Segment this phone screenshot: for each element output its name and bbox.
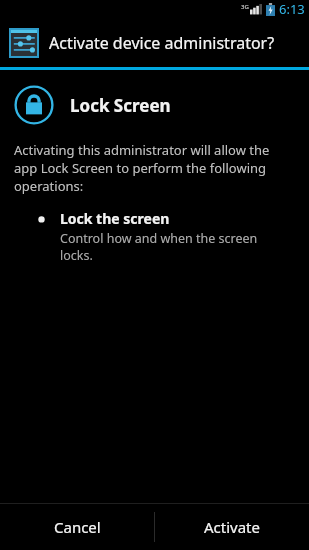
staticText: 3G [241,3,249,11]
staticText: Activate device administrator? [49,32,275,54]
staticText: 6:13 [279,0,305,18]
staticText: Cancel [54,517,101,537]
staticText: Control how and when the screen locks. [60,230,289,263]
button[interactable]: Activate [155,504,309,550]
button[interactable]: Cancel [0,504,154,550]
staticText: Activate [204,517,260,537]
staticText: Lock the screen [60,209,170,228]
staticText: Lock Screen [70,94,171,117]
staticText: Activating this administrator will allow… [14,141,293,195]
